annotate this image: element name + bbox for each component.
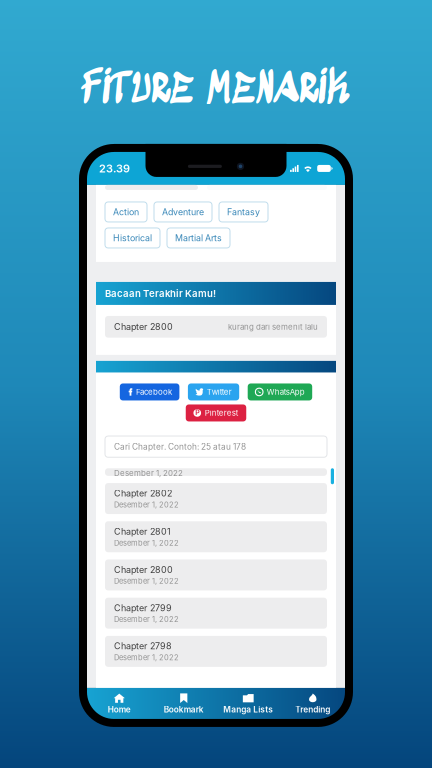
- staticText: kurang dari semenit lalu: [228, 322, 318, 332]
- staticText: Adventure: [162, 207, 204, 217]
- button[interactable]: Action: [105, 202, 147, 222]
- staticText: Desember 1, 2022: [114, 500, 179, 509]
- staticText: Trending: [295, 704, 330, 714]
- button[interactable]: Bookmark: [151, 688, 216, 718]
- staticText: Martial Arts: [175, 233, 222, 243]
- button[interactable]: Fantasy: [219, 202, 268, 222]
- staticText: Cari Chapter. Contoh: 25 atau 178: [114, 442, 246, 452]
- staticText: Action: [113, 207, 139, 217]
- staticText: Chapter 2799: [114, 602, 172, 613]
- button[interactable]: Chapter 2802: [105, 483, 327, 514]
- button[interactable]: Chapter 2801: [105, 521, 327, 552]
- staticText: WhatsApp: [267, 387, 305, 397]
- staticText: Desember 1, 2022: [114, 538, 179, 547]
- button[interactable]: P: [186, 404, 246, 421]
- staticText: Desember 1, 2022: [114, 615, 179, 624]
- button[interactable]: Facebook: [120, 383, 179, 400]
- staticText: P: [195, 409, 199, 417]
- staticText: Pinterest: [205, 408, 239, 418]
- button[interactable]: Twitter: [188, 383, 239, 400]
- button[interactable]: Chapter 2800: [105, 559, 327, 590]
- button[interactable]: Martial Arts: [167, 228, 230, 248]
- staticText: Chapter 2801: [114, 526, 171, 537]
- staticText: FITURE MENARIK: [81, 66, 351, 116]
- staticText: 23.39: [99, 162, 130, 175]
- staticText: Chapter 2800: [114, 564, 173, 575]
- button[interactable]: Trending: [280, 688, 345, 718]
- staticText: Chapter 2800: [114, 321, 173, 332]
- staticText: Desember 1, 2022: [114, 653, 179, 662]
- staticText: Facebook: [136, 387, 172, 397]
- button[interactable]: Manga Lists: [216, 688, 280, 718]
- staticText: Desember 1, 2022: [114, 577, 179, 586]
- staticText: Twitter: [207, 387, 232, 397]
- button[interactable]: Chapter 2798: [105, 636, 327, 667]
- staticText: Historical: [113, 233, 152, 243]
- button[interactable]: Historical: [105, 228, 160, 248]
- button[interactable]: Adventure: [154, 202, 212, 222]
- button[interactable]: Chapter 2799: [105, 598, 327, 629]
- staticText: Desember 1, 2022: [114, 468, 183, 478]
- staticText: Chapter 2798: [114, 641, 172, 651]
- button[interactable]: WhatsApp: [248, 383, 312, 400]
- staticText: Bacaan Terakhir Kamu!: [105, 288, 216, 299]
- staticText: Bookmark: [164, 704, 204, 714]
- staticText: Manga Lists: [223, 704, 273, 714]
- staticText: Home: [108, 704, 131, 714]
- button[interactable]: Home: [87, 688, 151, 718]
- staticText: Fantasy: [227, 207, 260, 217]
- staticText: Chapter 2802: [114, 488, 172, 499]
